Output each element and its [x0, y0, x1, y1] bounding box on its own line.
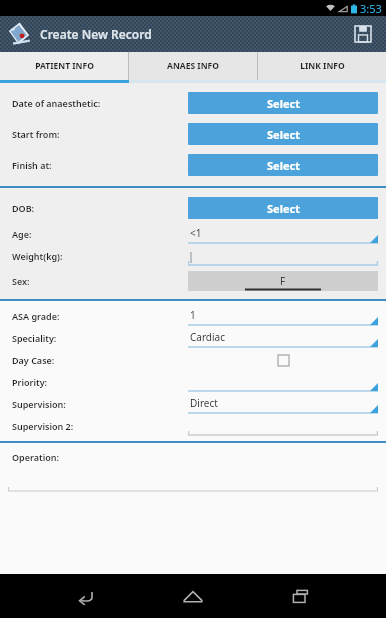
button[interactable]: Select [188, 197, 378, 219]
staticText: Select [267, 158, 300, 173]
button[interactable]: Select [188, 92, 378, 114]
staticText: Direct [190, 396, 218, 410]
staticText: 1 [190, 308, 196, 322]
button[interactable]: <1 [188, 223, 378, 245]
staticText: DOB: [12, 202, 35, 214]
staticText: Select [267, 201, 300, 216]
button[interactable]: 1 [188, 305, 378, 327]
staticText: Finish at: [12, 159, 52, 171]
button[interactable]: Back [64, 574, 108, 618]
button[interactable]: PATIENT INFO [0, 52, 128, 80]
staticText: PATIENT INFO [35, 60, 94, 72]
staticText: Select [267, 127, 300, 142]
staticText: Weight(kg): [12, 250, 63, 262]
staticText: Age: [12, 228, 32, 240]
staticText: ASA grade: [12, 310, 60, 322]
button[interactable]: Day case checkbox [273, 350, 293, 370]
staticText: Start from: [12, 128, 60, 140]
button[interactable]: Select [188, 154, 378, 176]
staticText: <1 [190, 226, 202, 240]
staticText: Supervision 2: [12, 420, 74, 432]
button[interactable]: Home [171, 574, 215, 618]
button[interactable]: Cardiac [188, 327, 378, 349]
staticText: Create New Record [40, 26, 152, 42]
staticText: Operation: [12, 451, 59, 463]
staticText: Speciality: [12, 332, 57, 344]
staticText: Sex: [12, 275, 30, 287]
staticText: Supervision: [12, 398, 66, 410]
staticText: Date of anaesthetic: [12, 97, 101, 109]
staticText: Day Case: [12, 354, 55, 366]
button[interactable] [188, 245, 378, 267]
button[interactable] [8, 477, 378, 491]
staticText: LINK INFO [300, 60, 345, 72]
button[interactable]: LINK INFO [258, 52, 386, 80]
button[interactable]: Select [188, 123, 378, 145]
staticText: ANAES INFO [167, 60, 219, 72]
button[interactable] [188, 415, 378, 437]
staticText: 3:53 [360, 1, 382, 16]
staticText: Priority: [12, 376, 48, 388]
button[interactable] [188, 371, 378, 393]
staticText: Cardiac [190, 330, 225, 344]
button[interactable]: Recent apps [279, 574, 323, 618]
button[interactable]: ANAES INFO [129, 52, 257, 80]
button[interactable]: F [188, 271, 378, 291]
staticText: F [280, 274, 286, 288]
button[interactable]: Save [348, 19, 378, 49]
button[interactable]: Direct [188, 393, 378, 415]
staticText: Select [267, 96, 300, 111]
